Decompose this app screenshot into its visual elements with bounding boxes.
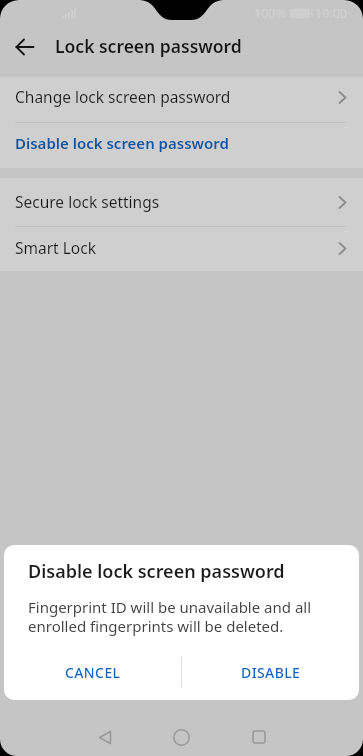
staticText: 10:00 <box>315 5 347 22</box>
button[interactable] <box>66 718 143 756</box>
staticText: Fingerprint ID will be unavailable and a… <box>28 597 335 636</box>
button[interactable]: CANCEL <box>4 648 181 696</box>
button[interactable] <box>143 718 220 756</box>
staticText: Disable lock screen password <box>15 133 229 153</box>
staticText: Secure lock settings <box>15 191 160 212</box>
staticText: DISABLE <box>241 663 301 682</box>
button[interactable] <box>16 38 34 56</box>
staticText: Smart Lock <box>15 237 96 258</box>
button[interactable]: Smart Lock <box>0 227 363 271</box>
staticText: Disable lock screen password <box>28 559 285 584</box>
staticText: CANCEL <box>65 663 121 682</box>
button[interactable]: Secure lock settings <box>0 178 363 226</box>
button[interactable] <box>220 718 297 756</box>
button[interactable]: DISABLE <box>182 648 359 696</box>
staticText: Change lock screen password <box>15 86 231 107</box>
button[interactable]: Change lock screen password <box>0 77 363 122</box>
button[interactable]: Disable lock screen password <box>0 123 363 168</box>
staticText: Lock screen password <box>55 34 242 58</box>
staticText: 100% <box>254 5 286 22</box>
